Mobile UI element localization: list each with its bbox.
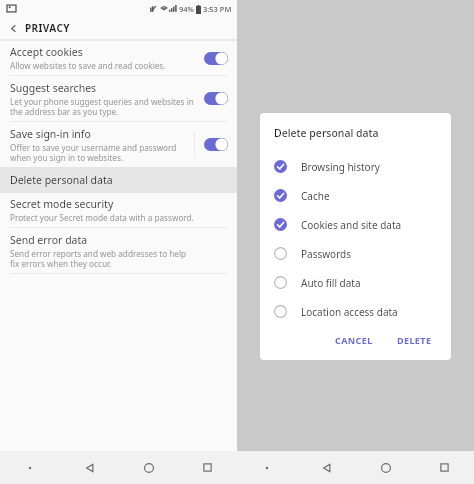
button[interactable]: Passwords: [260, 239, 451, 268]
staticText: Location access data: [301, 305, 398, 319]
staticText: Delete personal data: [10, 173, 113, 187]
button[interactable]: Back: [297, 451, 356, 484]
staticText: Secret mode security: [247, 197, 351, 211]
button[interactable]: Delete personal data: [237, 167, 474, 193]
button[interactable]: Home: [356, 451, 415, 484]
button[interactable]: Auto fill data: [260, 268, 451, 297]
staticText: Send error reports and web addresses to …: [10, 248, 187, 269]
staticText: Protect your Secret mode data with a pas…: [10, 212, 194, 223]
staticText: Cookies and site data: [301, 218, 402, 232]
staticText: PRIVACY: [25, 21, 70, 35]
button[interactable]: Menu: [0, 451, 60, 484]
staticText: Allow websites to save and read cookies.: [10, 60, 166, 71]
button[interactable]: Accept cookies: [0, 41, 237, 75]
button[interactable]: Send error data: [0, 228, 237, 273]
staticText: Passwords: [301, 247, 352, 261]
button[interactable]: Toggle: [204, 52, 228, 65]
staticText: Let your phone suggest queries and websi…: [10, 96, 194, 117]
button[interactable]: Toggle: [441, 138, 465, 151]
staticText: Auto fill data: [301, 276, 361, 290]
button[interactable]: CANCEL: [330, 332, 378, 348]
button[interactable]: Toggle: [204, 138, 228, 151]
staticText: DELETE: [397, 334, 432, 346]
button[interactable]: Menu: [237, 451, 297, 484]
button[interactable]: Cache: [260, 181, 451, 210]
staticText: Save sign-in info: [10, 127, 91, 141]
button[interactable]: Send error data: [237, 228, 474, 273]
button[interactable]: Toggle: [204, 92, 228, 105]
button[interactable]: Back: [60, 451, 119, 484]
staticText: Let your phone suggest queries and websi…: [247, 96, 431, 117]
button[interactable]: Home: [356, 451, 415, 484]
button[interactable]: Recents: [415, 451, 474, 484]
staticText: Delete personal data: [247, 173, 350, 187]
button[interactable]: Cookies and site data: [260, 210, 451, 239]
staticText: Send error data: [10, 233, 88, 247]
button[interactable]: Location access data: [260, 297, 451, 326]
staticText: CANCEL: [335, 334, 373, 346]
staticText: Offer to save your username and password…: [10, 142, 177, 163]
staticText: Browsing history: [301, 160, 380, 174]
button[interactable]: Browsing history: [260, 152, 451, 181]
button[interactable]: Secret mode security: [237, 193, 474, 227]
staticText: 94%: [179, 4, 194, 14]
button[interactable]: Secret mode security: [0, 193, 237, 227]
staticText: Suggest searches: [10, 81, 97, 95]
staticText: Secret mode security: [10, 197, 114, 211]
staticText: Protect your Secret mode data with a pas…: [247, 212, 431, 223]
button[interactable]: Suggest searches: [0, 76, 237, 121]
staticText: Accept cookies: [10, 45, 83, 59]
button[interactable]: Delete personal data: [0, 167, 237, 193]
button[interactable]: Back: [297, 451, 356, 484]
button[interactable]: Recents: [178, 451, 237, 484]
button[interactable]: Save sign-in info: [0, 122, 237, 167]
button[interactable]: Menu: [237, 451, 297, 484]
staticText: Save sign-in info: [247, 127, 328, 141]
button[interactable]: Recents: [415, 451, 474, 484]
button[interactable]: Suggest searches: [237, 76, 474, 121]
staticText: Offer to save your username and password…: [247, 142, 414, 163]
button[interactable]: Home: [119, 451, 178, 484]
button[interactable]: Back: [3, 18, 23, 38]
button[interactable]: DELETE: [392, 332, 437, 348]
staticText: Delete personal data: [274, 126, 379, 140]
staticText: Cache: [301, 189, 330, 203]
staticText: Send error data: [247, 233, 325, 247]
staticText: Send error reports and web addresses to …: [247, 248, 424, 269]
staticText: 3:53 PM: [203, 4, 232, 14]
button[interactable]: Save sign-in info: [237, 122, 474, 167]
